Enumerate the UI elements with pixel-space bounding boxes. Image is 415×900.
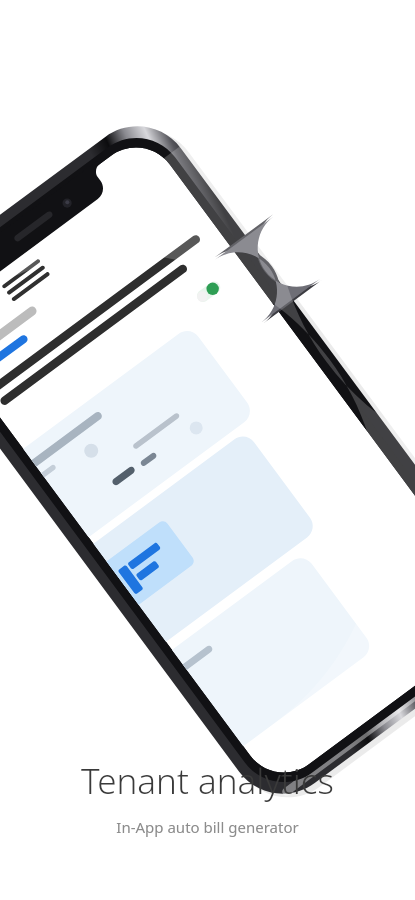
button[interactable]: Tenant analytics [0,757,415,837]
staticText: Tenant analytics [81,757,334,805]
staticText: In-App auto bill generator [116,817,299,837]
other: Tenant analytics app preview [0,0,415,900]
